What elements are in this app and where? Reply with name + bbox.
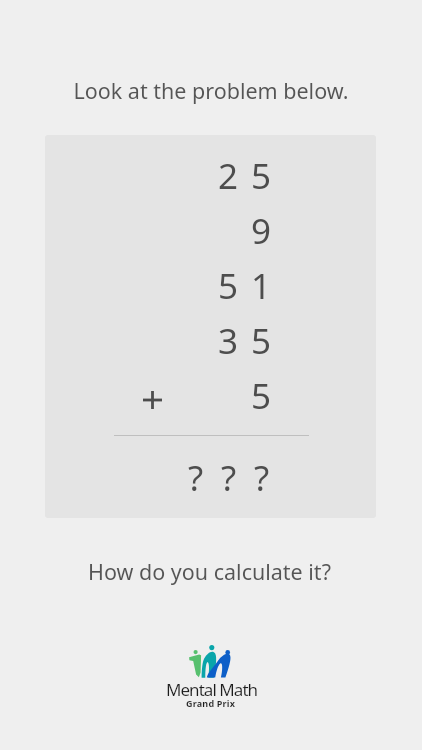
staticText: 5 <box>251 152 272 200</box>
staticText: 2 <box>218 152 239 200</box>
staticText: Grand Prix <box>186 697 236 709</box>
staticText: Look at the problem below. <box>73 76 349 105</box>
staticText: 5 <box>218 262 239 310</box>
staticText: ? <box>254 454 270 502</box>
staticText: 3 <box>218 317 239 365</box>
staticText: ? <box>188 454 204 502</box>
staticText: Mental Math <box>166 678 258 701</box>
staticText: ? <box>221 454 237 502</box>
staticText: 5 <box>251 317 272 365</box>
staticText: 9 <box>251 207 272 255</box>
staticText: 5 <box>251 372 272 420</box>
staticText: How do you calculate it? <box>88 557 331 586</box>
staticText: 1 <box>251 262 272 310</box>
